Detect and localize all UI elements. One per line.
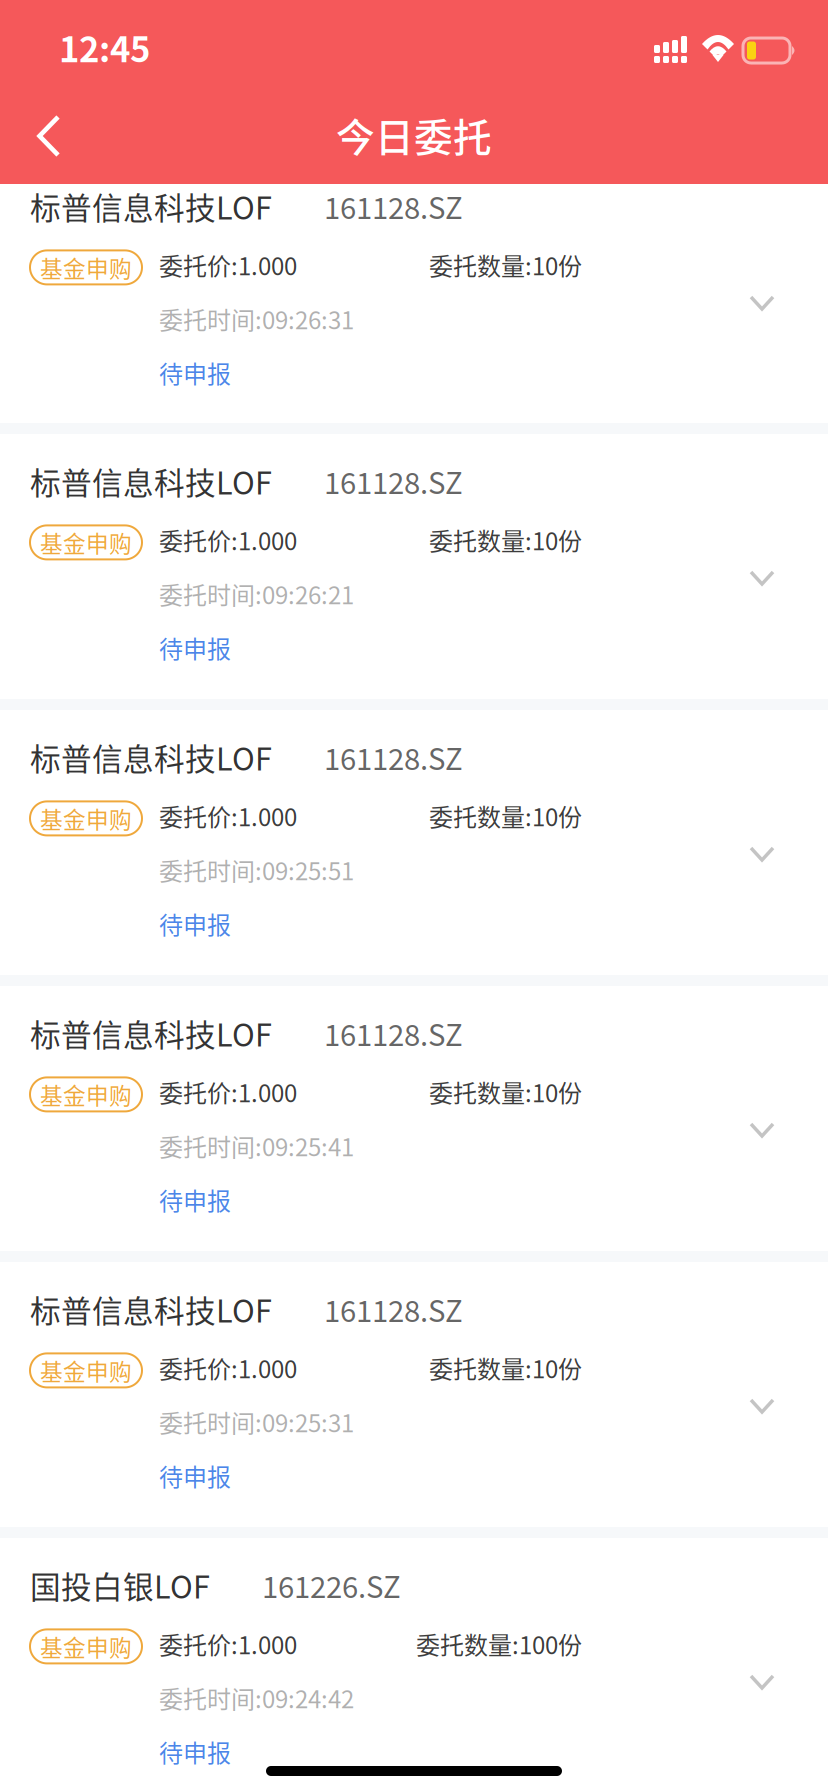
staticText: 基金申购 [40,1630,132,1663]
staticText: 委托时间:09:24:42 [159,1680,354,1715]
button[interactable]: 标普信息科技LOF [0,710,828,975]
staticText: 委托价:1.000 [159,1350,297,1385]
staticText: 161128.SZ [324,736,463,778]
staticText: 委托时间:09:25:31 [159,1404,354,1439]
staticText: 委托数量:10份 [429,798,582,833]
button[interactable]: Back [0,88,98,184]
staticText: 161128.SZ [324,460,463,502]
button[interactable]: 标普信息科技LOF [0,184,828,423]
staticText: 委托时间:09:26:31 [159,301,354,336]
staticText: 161128.SZ [324,185,463,227]
staticText: 基金申购 [40,251,132,284]
staticText: 基金申购 [40,1354,132,1387]
button[interactable]: 标普信息科技LOF [0,434,828,699]
staticText: 待申报 [159,1182,231,1217]
staticText: 待申报 [159,1458,231,1493]
staticText: 委托数量:100份 [416,1626,582,1661]
staticText: 待申报 [159,1734,231,1769]
staticText: 待申报 [159,906,231,941]
staticText: 国投白银LOF [30,1563,210,1607]
staticText: 委托时间:09:25:41 [159,1128,354,1163]
staticText: 委托数量:10份 [429,1350,582,1385]
staticText: 标普信息科技LOF [30,735,272,779]
staticText: 委托数量:10份 [429,1074,582,1109]
staticText: 基金申购 [40,1078,132,1111]
staticText: 基金申购 [40,526,132,559]
button[interactable]: 标普信息科技LOF [0,1262,828,1527]
staticText: 161128.SZ [324,1288,463,1330]
staticText: 待申报 [159,355,231,390]
staticText: 待申报 [159,630,231,665]
staticText: 委托时间:09:25:51 [159,852,354,887]
staticText: 今日委托 [336,107,492,163]
staticText: 委托价:1.000 [159,798,297,833]
staticText: 委托价:1.000 [159,522,297,557]
staticText: 标普信息科技LOF [30,1287,272,1331]
staticText: 委托数量:10份 [429,247,582,282]
button[interactable]: 标普信息科技LOF [0,986,828,1251]
staticText: 标普信息科技LOF [30,1011,272,1055]
staticText: 12:45 [59,22,150,72]
staticText: 委托价:1.000 [159,1074,297,1109]
button[interactable]: 国投白银LOF [0,1538,828,1792]
staticText: 标普信息科技LOF [30,459,272,503]
staticText: 委托价:1.000 [159,247,297,282]
staticText: 委托时间:09:26:21 [159,576,354,611]
staticText: 161226.SZ [262,1564,401,1606]
staticText: 委托价:1.000 [159,1626,297,1661]
staticText: 标普信息科技LOF [30,184,272,228]
staticText: 基金申购 [40,802,132,835]
staticText: 161128.SZ [324,1012,463,1054]
staticText: 委托数量:10份 [429,522,582,557]
